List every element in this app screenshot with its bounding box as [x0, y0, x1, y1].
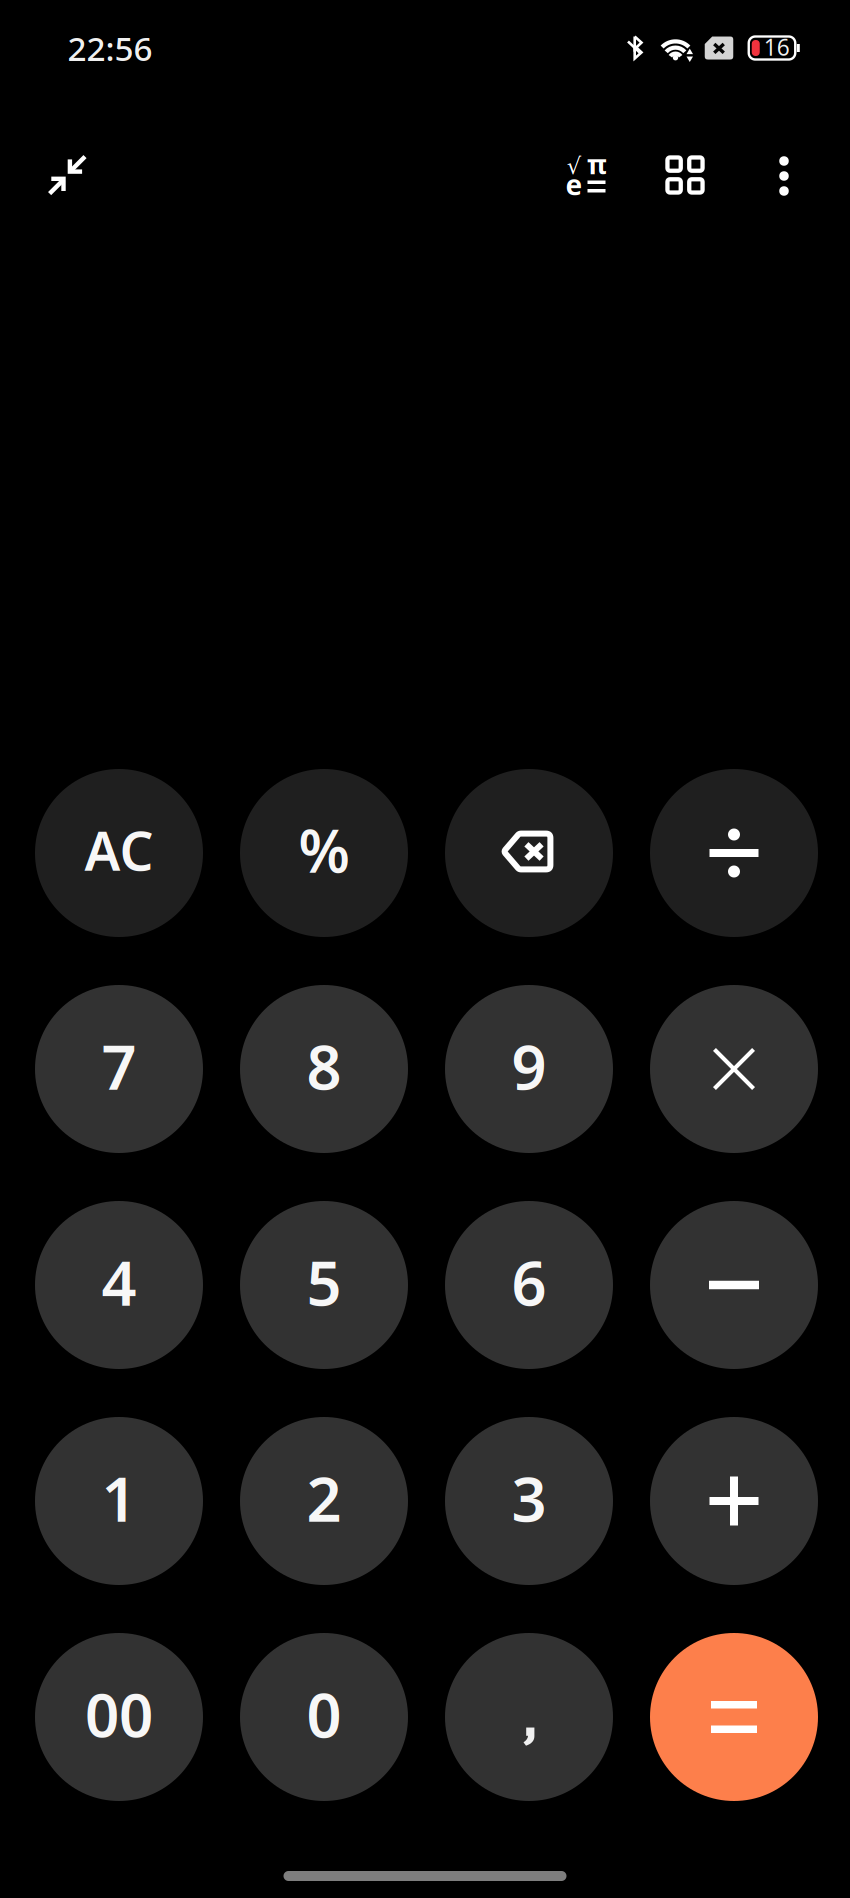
staticText: 00 — [85, 1674, 153, 1754]
button[interactable]: 8 — [240, 985, 408, 1153]
button[interactable]: Collapse — [26, 134, 110, 218]
staticText: 3 — [511, 1457, 546, 1539]
staticText: 5 — [306, 1241, 341, 1323]
staticText: 22:56 — [67, 26, 152, 70]
staticText: 6 — [511, 1241, 546, 1323]
button[interactable]: 1 — [35, 1417, 203, 1585]
staticText: 2 — [306, 1457, 341, 1539]
button[interactable]: AC — [35, 769, 203, 937]
button[interactable]: Multiply — [650, 985, 818, 1153]
staticText: 0 — [306, 1673, 341, 1755]
button[interactable]: 9 — [445, 985, 613, 1153]
button[interactable]: 00 — [35, 1633, 203, 1801]
staticText: % — [298, 811, 349, 889]
button[interactable]: Scientific mode — [546, 135, 624, 215]
button[interactable]: Decimal separator — [445, 1633, 613, 1801]
button[interactable]: 0 — [240, 1633, 408, 1801]
staticText: 1 — [101, 1457, 136, 1539]
button[interactable]: Unit converter — [646, 135, 724, 215]
staticText: 16 — [764, 32, 790, 62]
button[interactable]: % — [240, 769, 408, 937]
button[interactable]: Equals — [650, 1633, 818, 1801]
staticText: 8 — [306, 1025, 341, 1107]
staticText: AC — [84, 815, 153, 885]
staticText: 7 — [101, 1025, 136, 1107]
button[interactable]: Minus — [650, 1201, 818, 1369]
button[interactable]: More options — [752, 136, 816, 216]
button[interactable]: 4 — [35, 1201, 203, 1369]
button[interactable]: Divide — [650, 769, 818, 937]
button[interactable]: 6 — [445, 1201, 613, 1369]
button[interactable]: 2 — [240, 1417, 408, 1585]
button[interactable]: Delete — [445, 769, 613, 937]
button[interactable]: 3 — [445, 1417, 613, 1585]
staticText: π — [587, 146, 607, 182]
staticText: 9 — [511, 1025, 546, 1107]
button[interactable]: 5 — [240, 1201, 408, 1369]
staticText: e — [565, 166, 582, 203]
button[interactable]: Plus — [650, 1417, 818, 1585]
button[interactable]: 7 — [35, 985, 203, 1153]
staticText: 4 — [101, 1241, 136, 1323]
staticText: √ — [567, 153, 581, 179]
